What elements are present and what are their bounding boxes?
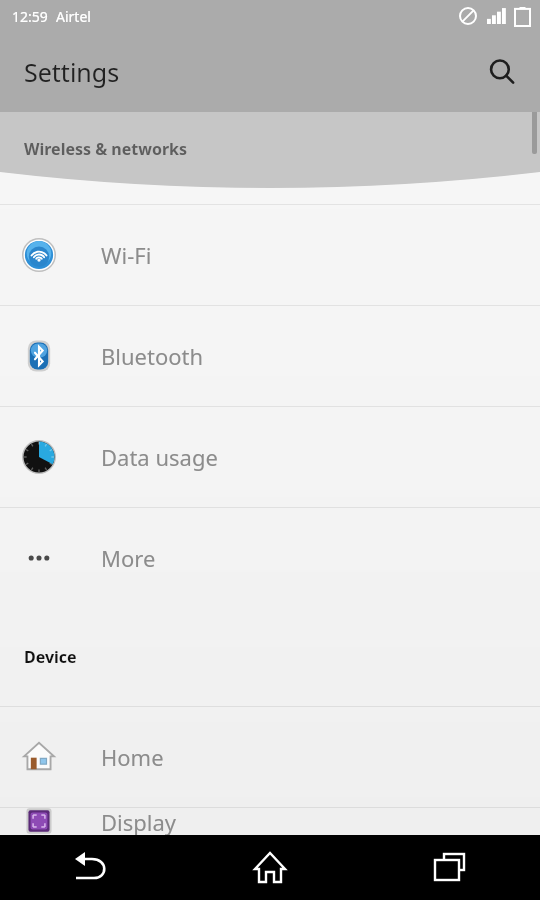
button[interactable]: Home	[180, 835, 360, 900]
staticText: Display	[101, 807, 177, 835]
button[interactable]: Recents	[360, 835, 540, 900]
staticText: Data usage	[101, 442, 218, 472]
staticText: Bluetooth	[101, 341, 204, 371]
button[interactable]: Search	[478, 48, 526, 96]
button[interactable]: Display	[0, 807, 540, 835]
staticText: Airtel	[56, 7, 91, 26]
staticText: Home	[101, 742, 164, 772]
staticText: 12:59	[12, 7, 48, 26]
staticText: Wireless & networks	[24, 138, 188, 160]
button[interactable]: Bluetooth	[0, 305, 540, 406]
button[interactable]: More	[0, 507, 540, 608]
button[interactable]: Wi-Fi	[0, 204, 540, 305]
button[interactable]: Back	[0, 835, 180, 900]
button[interactable]: Settings	[24, 55, 120, 89]
staticText: More	[101, 543, 156, 573]
button[interactable]: Data usage	[0, 406, 540, 507]
staticText: Device	[24, 646, 77, 668]
button[interactable]: Home	[0, 706, 540, 807]
staticText: Wi-Fi	[101, 240, 152, 270]
